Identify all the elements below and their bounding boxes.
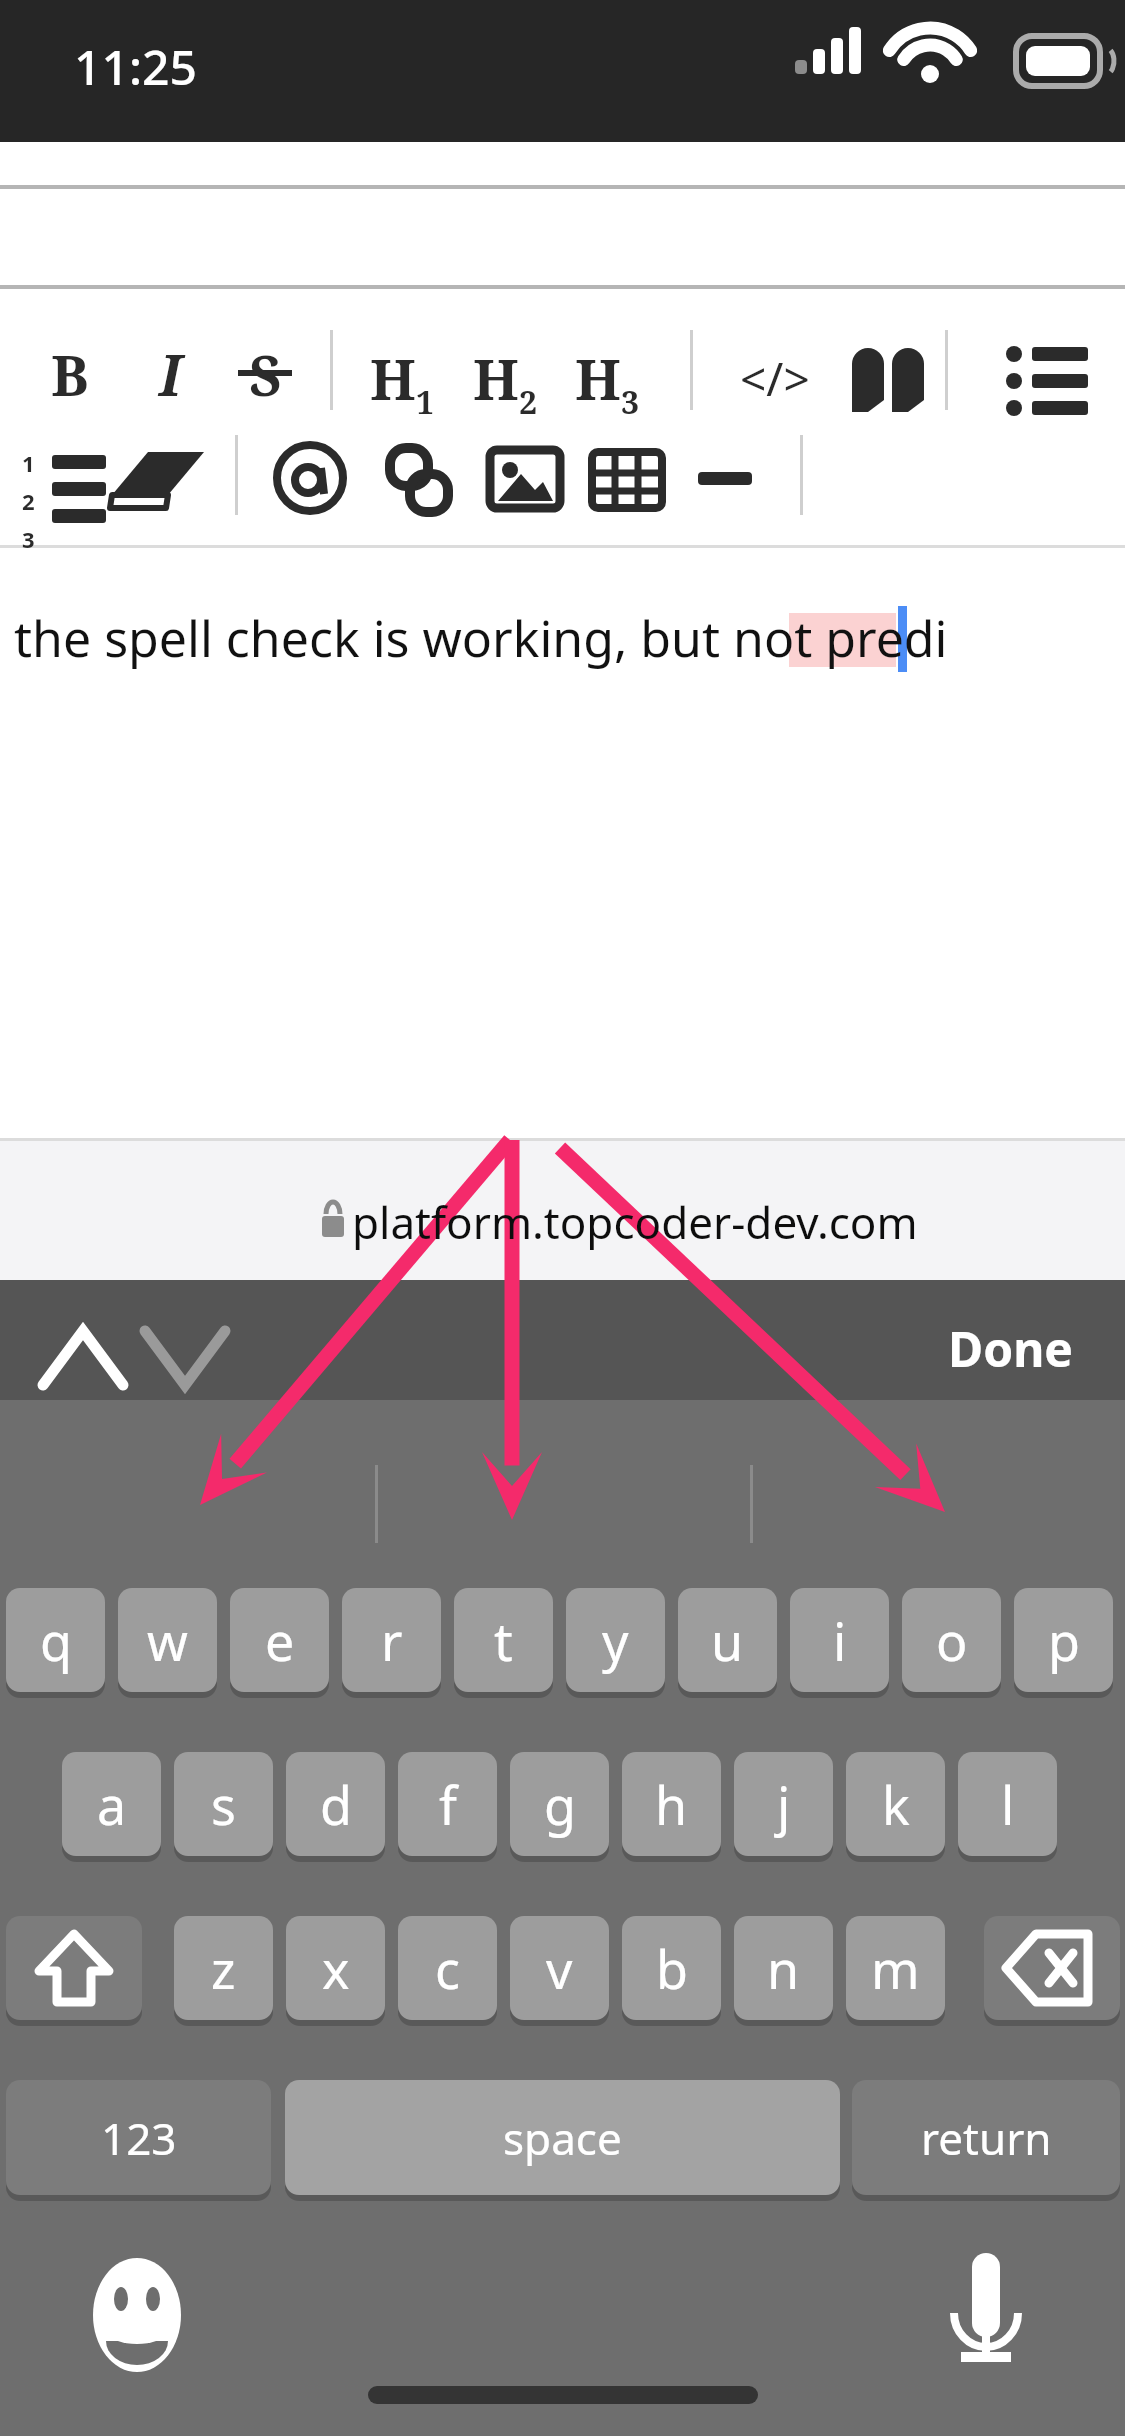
staticText: g	[544, 1769, 576, 1840]
staticText: </>	[740, 347, 810, 410]
staticText: H	[575, 340, 621, 416]
button[interactable]: Done	[925, 1305, 1095, 1391]
staticText: 1	[416, 380, 435, 424]
button[interactable]: i	[790, 1588, 889, 1692]
button[interactable]: space	[285, 2080, 840, 2195]
staticText: H	[370, 340, 416, 416]
staticText: S	[249, 336, 282, 412]
staticText: o	[936, 1605, 968, 1676]
button[interactable]: Strikethrough	[225, 332, 305, 416]
staticText: 1	[22, 448, 35, 478]
staticText: z	[211, 1933, 236, 2004]
staticText: r	[381, 1605, 403, 1676]
button[interactable]: w	[118, 1588, 217, 1692]
button[interactable]: a	[62, 1752, 161, 1856]
button[interactable]: Image	[480, 440, 575, 520]
button[interactable]: v	[510, 1916, 609, 2020]
button[interactable]: Mention	[275, 440, 365, 520]
staticText: 123	[101, 2108, 177, 2168]
staticText: w	[147, 1605, 188, 1676]
button[interactable]: d	[286, 1752, 385, 1856]
button[interactable]: Bulleted list	[990, 340, 1100, 420]
button[interactable]: k	[846, 1752, 945, 1856]
staticText: platform.topcoder-dev.com	[352, 1192, 918, 1252]
button[interactable]: Code	[725, 340, 825, 416]
button[interactable]: Italic	[130, 332, 210, 416]
button[interactable]: r	[342, 1588, 441, 1692]
button[interactable]: return	[852, 2080, 1120, 2195]
button[interactable]: Bold	[30, 332, 110, 416]
staticText: the spell check is working, but not pred…	[14, 604, 948, 672]
staticText: H	[473, 340, 519, 416]
staticText: e	[265, 1605, 295, 1676]
button[interactable]: Heading 3	[575, 336, 640, 416]
staticText: return	[921, 2108, 1052, 2168]
button[interactable]: q	[6, 1588, 105, 1692]
button[interactable]: Backspace	[984, 1916, 1120, 2020]
staticText: x	[322, 1933, 350, 2004]
button[interactable]: Heading 1	[370, 336, 435, 416]
staticText: d	[320, 1769, 352, 1840]
staticText: m	[871, 1933, 920, 2004]
button[interactable]: Heading 2	[473, 336, 538, 416]
button[interactable]: f	[398, 1752, 497, 1856]
staticText: I	[159, 336, 182, 412]
button[interactable]: Shift	[6, 1916, 142, 2020]
button[interactable]: z	[174, 1916, 273, 2020]
staticText: space	[503, 2108, 622, 2168]
button[interactable]: Quote	[840, 340, 940, 420]
staticText: 11:25	[74, 34, 197, 99]
staticText: y	[602, 1605, 629, 1676]
button[interactable]: Emoji keyboard	[80, 2250, 195, 2380]
button[interactable]: e	[230, 1588, 329, 1692]
staticText: b	[656, 1933, 688, 2004]
button[interactable]: Eraser	[110, 440, 210, 520]
button[interactable]: c	[398, 1916, 497, 2020]
staticText: q	[40, 1605, 72, 1676]
button[interactable]: g	[510, 1752, 609, 1856]
button[interactable]: h	[622, 1752, 721, 1856]
staticText: n	[767, 1933, 800, 2004]
staticText: h	[655, 1769, 688, 1840]
button[interactable]: x	[286, 1916, 385, 2020]
button[interactable]: b	[622, 1916, 721, 2020]
button[interactable]: j	[734, 1752, 833, 1856]
staticText: t	[494, 1605, 513, 1676]
button[interactable]: t	[454, 1588, 553, 1692]
button[interactable]: Next field	[135, 1300, 245, 1390]
button[interactable]: u	[678, 1588, 777, 1692]
button[interactable]: 123	[6, 2080, 271, 2195]
staticText: f	[439, 1769, 457, 1840]
staticText: Done	[948, 1316, 1073, 1381]
button[interactable]: m	[846, 1916, 945, 2020]
staticText: i	[833, 1605, 847, 1676]
button[interactable]: Link	[380, 440, 470, 520]
button[interactable]: l	[958, 1752, 1057, 1856]
staticText: a	[97, 1769, 127, 1840]
staticText: B	[51, 336, 89, 412]
button[interactable]: Table	[582, 440, 677, 520]
staticText: 3	[22, 524, 35, 554]
staticText: 3	[621, 380, 640, 424]
button[interactable]: Horizontal rule	[685, 440, 770, 520]
staticText: k	[882, 1769, 910, 1840]
staticText: s	[211, 1769, 236, 1840]
button[interactable]: Numbered list	[22, 448, 35, 554]
staticText: l	[1001, 1769, 1015, 1840]
staticText: c	[435, 1933, 460, 2004]
button[interactable]: Previous field	[20, 1300, 130, 1390]
button[interactable]: Dictation	[928, 2240, 1048, 2380]
button[interactable]: o	[902, 1588, 1001, 1692]
staticText: u	[711, 1605, 744, 1676]
staticText: v	[546, 1933, 573, 2004]
staticText: p	[1048, 1605, 1080, 1676]
staticText: j	[777, 1769, 791, 1840]
staticText: 2	[519, 380, 538, 424]
staticText: 2	[22, 486, 35, 516]
button[interactable]: p	[1014, 1588, 1113, 1692]
button[interactable]: y	[566, 1588, 665, 1692]
button[interactable]: s	[174, 1752, 273, 1856]
button[interactable]: n	[734, 1916, 833, 2020]
